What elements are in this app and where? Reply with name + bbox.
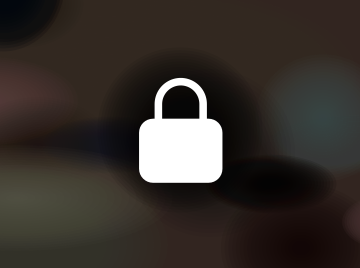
button[interactable]: Locked	[139, 78, 222, 183]
